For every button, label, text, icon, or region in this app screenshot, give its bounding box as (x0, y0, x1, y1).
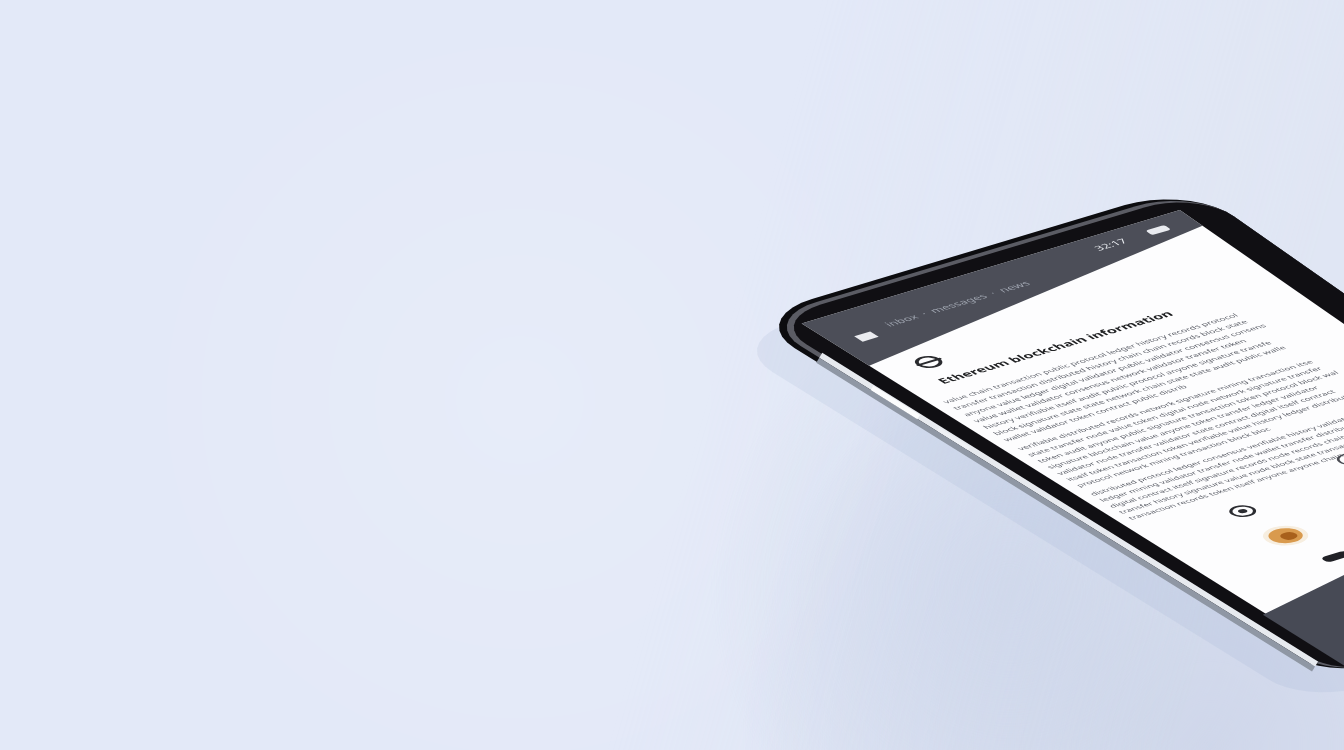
button[interactable]: Article on phone (0, 0, 1344, 750)
